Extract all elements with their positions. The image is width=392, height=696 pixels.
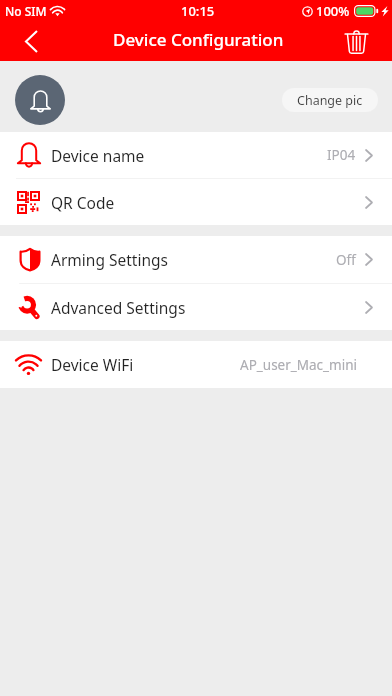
button[interactable]: Device name: [0, 132, 392, 178]
button[interactable]: Device WiFi: [0, 341, 392, 388]
button[interactable]: Back: [0, 22, 62, 61]
button[interactable]: Change pic: [282, 88, 378, 112]
staticText: Advanced Settings: [51, 297, 186, 318]
button[interactable]: Device picture: [15, 75, 65, 125]
button[interactable]: Advanced Settings: [0, 284, 392, 330]
staticText: Change pic: [297, 92, 363, 109]
staticText: 100%: [316, 2, 350, 20]
staticText: 10:15: [181, 2, 215, 20]
button[interactable]: Arming Settings: [0, 236, 392, 283]
staticText: Device Configuration: [113, 28, 284, 51]
staticText: IP04: [327, 146, 356, 164]
staticText: Off: [336, 251, 356, 269]
button[interactable]: Delete: [320, 22, 392, 61]
staticText: Device name: [51, 145, 145, 166]
staticText: QR Code: [51, 192, 115, 213]
staticText: AP_user_Mac_mini: [240, 356, 358, 374]
button[interactable]: QR Code: [0, 179, 392, 225]
staticText: No SIM: [5, 3, 47, 19]
staticText: Device WiFi: [51, 354, 134, 375]
staticText: Arming Settings: [51, 249, 168, 270]
